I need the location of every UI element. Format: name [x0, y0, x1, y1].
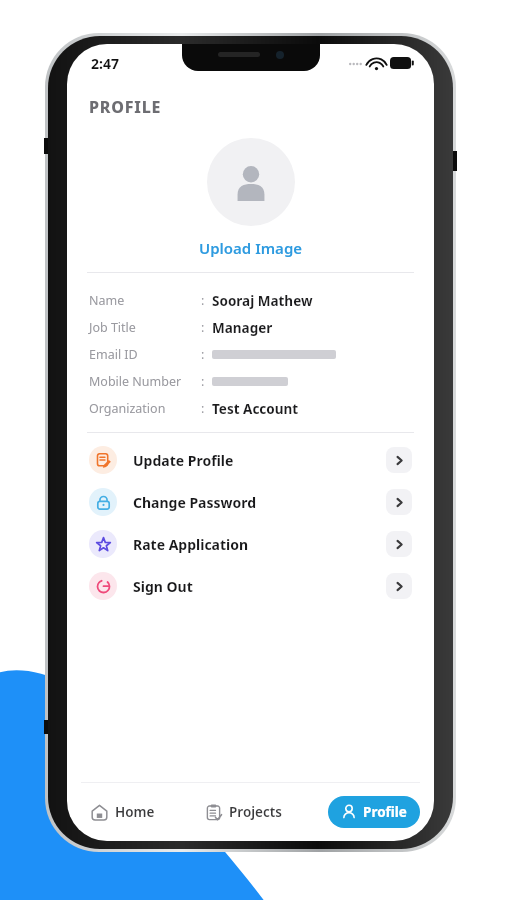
button[interactable]: Sign Out — [67, 565, 434, 607]
button[interactable]: Rate Application — [67, 523, 434, 565]
staticText: Sign Out — [133, 577, 193, 596]
staticText: Update Profile — [133, 451, 234, 470]
staticText: Home — [115, 803, 155, 821]
staticText: Upload Image — [199, 238, 303, 258]
staticText: : — [201, 319, 205, 336]
staticText: Change Password — [133, 493, 257, 512]
staticText: Email ID — [89, 346, 138, 363]
staticText: Profile — [363, 803, 407, 821]
staticText: Projects — [229, 803, 282, 821]
staticText: Manager — [212, 319, 273, 337]
staticText: Test Account — [212, 400, 299, 418]
button[interactable]: Profile — [328, 796, 420, 828]
staticText: 2:47 — [91, 54, 119, 73]
staticText: : — [201, 373, 205, 390]
staticText: Organization — [89, 400, 166, 417]
staticText: : — [201, 346, 205, 363]
staticText: : — [201, 400, 205, 417]
staticText: Rate Application — [133, 535, 249, 554]
staticText: Mobile Number — [89, 373, 182, 390]
button[interactable]: Projects — [201, 797, 286, 827]
staticText: : — [201, 292, 205, 309]
staticText: PROFILE — [89, 96, 162, 118]
button[interactable]: Update Profile — [67, 439, 434, 481]
staticText: Name — [89, 292, 125, 309]
button[interactable]: Upload Image — [199, 238, 303, 258]
staticText: Job Title — [89, 319, 136, 336]
button[interactable]: Change Password — [67, 481, 434, 523]
button[interactable]: Home — [87, 797, 159, 827]
staticText: Sooraj Mathew — [212, 292, 313, 310]
